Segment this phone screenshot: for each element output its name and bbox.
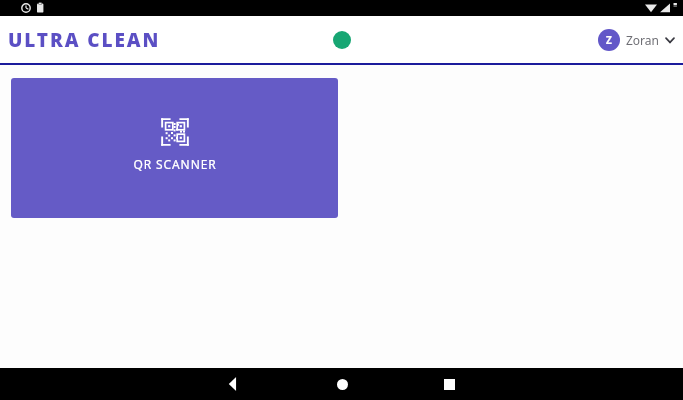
staticText: Z [606, 33, 612, 47]
staticText: Zoran [626, 32, 659, 48]
button[interactable]: QR SCANNER [11, 78, 338, 218]
button[interactable]: ULTRA CLEAN [8, 27, 161, 53]
button[interactable]: Home [322, 368, 362, 400]
button[interactable]: Z [598, 29, 676, 51]
staticText: QR SCANNER [133, 156, 217, 172]
button[interactable]: Back [213, 368, 253, 400]
button[interactable]: Connection status [333, 31, 351, 49]
button[interactable]: Recent apps [429, 368, 469, 400]
